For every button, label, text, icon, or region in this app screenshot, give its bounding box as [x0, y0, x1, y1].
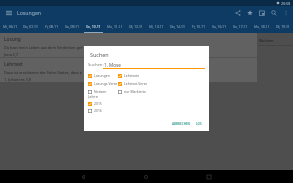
staticText: 1. Johannes 3,8: [4, 77, 31, 82]
button[interactable]: So, 17.11: [230, 19, 251, 33]
button[interactable]: Mo, 18.11: [251, 19, 272, 33]
staticText: Mi, 13.11: [149, 24, 164, 29]
staticText: Mi, 06.11: [3, 24, 18, 29]
staticText: So, 10.11: [86, 24, 101, 29]
button[interactable]: LOS: [195, 121, 203, 127]
staticText: Mo, 18.11: [254, 24, 270, 29]
staticText: Losungen: [94, 73, 110, 78]
staticText: So, 17.11: [233, 24, 248, 29]
button[interactable]: Open navigation drawer: [0, 6, 17, 19]
button[interactable]: Fr, 15.11: [188, 19, 209, 33]
button[interactable]: Calendar: [256, 6, 268, 19]
staticText: Du hast mein Leben aus dem Verderben gef: [4, 45, 83, 50]
button[interactable]: Mi, 13.11: [146, 19, 167, 33]
button[interactable]: 2015: [88, 101, 102, 106]
staticText: Sa, 09.11: [65, 24, 80, 29]
staticText: Di, 19.11: [276, 24, 290, 29]
button[interactable]: Mi, 06.11: [0, 19, 20, 33]
button[interactable]: Do, 07.11: [20, 19, 41, 33]
button[interactable]: Fr, 08.11: [41, 19, 62, 33]
staticText: Di, 12.11: [129, 24, 143, 29]
staticText: Lehrtext-Verse: [124, 81, 148, 86]
button[interactable]: Notizen: [88, 89, 107, 94]
button[interactable]: Do, 14.11: [167, 19, 188, 33]
staticText: Suchen:: [88, 62, 104, 68]
staticText: Do, 07.11: [23, 24, 38, 29]
staticText: 20:58: [281, 1, 291, 6]
staticText: Lehrtext: [4, 61, 23, 68]
button[interactable]: Home: [133, 170, 159, 183]
staticText: Fr, 08.11: [45, 24, 59, 29]
button[interactable]: Mo, 11.11: [104, 19, 125, 33]
staticText: 1. Mose: [104, 62, 121, 68]
button[interactable]: Di, 19.11: [272, 19, 293, 33]
staticText: Jahre: [88, 94, 99, 100]
staticText: Losung: [4, 36, 21, 43]
button[interactable]: Losungen: [88, 73, 110, 78]
staticText: Sa, 16.11: [212, 24, 227, 29]
button[interactable]: Di, 12.11: [125, 19, 146, 33]
button[interactable]: Back: [70, 170, 96, 183]
staticText: Mo, 11.11: [107, 24, 123, 29]
staticText: Notizen: [259, 38, 274, 43]
staticText: Losungs-Verse: [94, 81, 118, 86]
button[interactable]: So, 10.11: [83, 19, 104, 33]
staticText: Jona 2,7: [4, 52, 19, 57]
staticText: ABBRECHEN: [172, 122, 191, 126]
staticText: Suchen: [90, 51, 109, 58]
staticText: LOS: [196, 122, 202, 126]
button[interactable]: Sa, 16.11: [209, 19, 230, 33]
staticText: nur Markierte: [124, 89, 146, 94]
staticText: 2016: [94, 108, 102, 113]
button[interactable]: Losungs-Verse: [88, 81, 118, 86]
staticText: Losungen: [17, 9, 42, 16]
button[interactable]: Lehrtext-Verse: [118, 81, 148, 86]
button[interactable]: Sa, 09.11: [62, 19, 83, 33]
button[interactable]: Favorite: [244, 6, 256, 19]
staticText: Notizen: [94, 89, 107, 94]
button[interactable]: More options: [280, 6, 292, 19]
staticText: 2015: [94, 101, 102, 106]
staticText: Fr, 15.11: [192, 24, 206, 29]
button[interactable]: 2016: [88, 108, 102, 113]
staticText: Do, 14.11: [170, 24, 185, 29]
staticText: Lehrtexte: [124, 73, 140, 78]
button[interactable]: ABBRECHEN: [171, 121, 192, 127]
button[interactable]: Share: [232, 6, 244, 19]
button[interactable]: nur Markierte: [118, 89, 146, 94]
button[interactable]: Recent apps: [196, 170, 222, 183]
button[interactable]: Search: [268, 6, 280, 19]
button[interactable]: Lehrtexte: [118, 73, 140, 78]
staticText: Dazu ist erschienen der Sohn Gottes, das…: [4, 70, 82, 75]
